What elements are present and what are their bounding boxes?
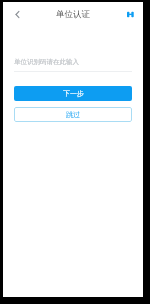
staticText: 下一步 xyxy=(63,89,84,98)
button[interactable]: 下一步 xyxy=(14,86,132,101)
staticText: 单位识别码请在此输入 xyxy=(14,58,79,66)
button[interactable]: 单位识别码请在此输入 xyxy=(14,52,132,72)
staticText: 单位认证 xyxy=(56,9,90,20)
button[interactable]: 跳过 xyxy=(14,107,132,122)
staticText: 跳过 xyxy=(66,110,80,119)
button[interactable]: Help xyxy=(123,7,137,21)
button[interactable]: Back xyxy=(9,6,25,22)
